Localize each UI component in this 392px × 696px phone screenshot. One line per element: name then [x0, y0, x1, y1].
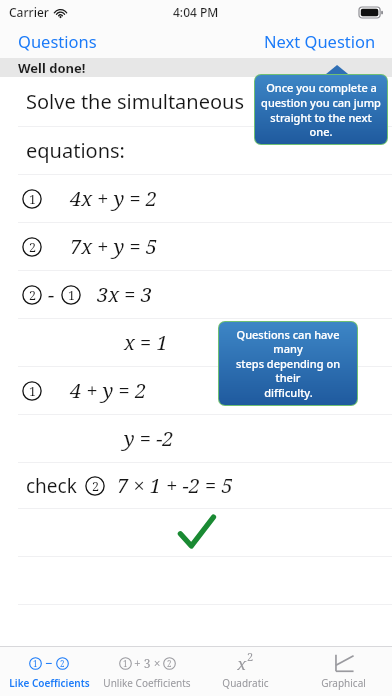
button[interactable]: Graphical [294, 647, 392, 696]
staticText: − [48, 281, 55, 308]
staticText: Graphical [321, 676, 366, 690]
staticText: 2 [29, 287, 36, 304]
staticText: x = 1 [124, 329, 168, 356]
staticText: y = −2 [124, 425, 174, 452]
staticText: 3x = 3 [97, 281, 152, 308]
staticText: Questions [18, 30, 97, 52]
staticText: question you can jump [261, 95, 381, 110]
staticText: 4 + y = 2 [70, 377, 147, 404]
staticText: 4:04 PM [173, 4, 219, 20]
staticText: 2 [60, 658, 65, 669]
staticText: Once you complete a [266, 80, 377, 95]
staticText: Well done! [18, 59, 86, 77]
staticText: straight to the next one. [261, 110, 381, 139]
staticText: check [26, 473, 77, 499]
staticText: 2 [247, 649, 254, 664]
staticText: 1 [29, 383, 36, 400]
button[interactable]: Questions [0, 26, 115, 56]
staticText: 7x + y = 5 [70, 233, 157, 260]
staticText: Next Question [264, 30, 376, 52]
staticText: x [237, 652, 247, 674]
staticText: difficulty. [264, 385, 313, 400]
button[interactable]: Next Question [248, 26, 392, 56]
staticText: Quadratic [222, 676, 269, 690]
button[interactable]: Once you complete a [255, 75, 387, 144]
button[interactable]: 1 [98, 647, 196, 696]
staticText: 1 [33, 658, 38, 669]
button[interactable]: x [196, 647, 294, 696]
staticText: 1 [123, 658, 128, 669]
staticText: Unlike Coefficients [103, 676, 191, 690]
staticText: Solve the simultaneous [26, 88, 245, 115]
staticText: Like Coefficients [9, 676, 90, 690]
staticText: + 3 × [134, 655, 161, 671]
staticText: 4x + y = 2 [70, 185, 157, 212]
staticText: Carrier [9, 4, 49, 20]
button[interactable]: 1 [0, 647, 98, 696]
staticText: equations: [26, 137, 125, 164]
staticText: 2 [29, 239, 36, 256]
staticText: 2 [92, 478, 99, 495]
staticText: 1 [29, 191, 36, 208]
staticText: Questions can have many [225, 327, 351, 356]
staticText: 2 [167, 658, 172, 669]
button[interactable]: Questions can have many [219, 322, 357, 405]
staticText: steps depending on their [225, 356, 351, 385]
staticText: 7 × 1 + −2 = 5 [117, 472, 233, 499]
staticText: − [45, 654, 53, 672]
staticText: 1 [68, 287, 75, 304]
